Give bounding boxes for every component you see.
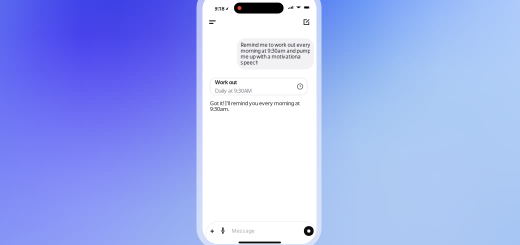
button[interactable]: New chat — [299, 16, 313, 28]
staticText: Message — [231, 227, 254, 234]
staticText: Work out — [215, 79, 237, 86]
button[interactable]: Add attachment — [207, 226, 217, 236]
button[interactable]: Menu — [205, 16, 219, 28]
staticText: Remind me to work out every morning at 9… — [240, 41, 310, 66]
button[interactable]: Work out — [210, 78, 307, 95]
staticText: Daily at 9:30AM — [215, 87, 252, 94]
button[interactable]: Dictate — [218, 225, 228, 236]
staticText: Got it! I'll remind you every morning at… — [210, 100, 300, 113]
button[interactable]: Stop generating — [304, 226, 314, 236]
staticText: 9:18 — [214, 5, 224, 12]
